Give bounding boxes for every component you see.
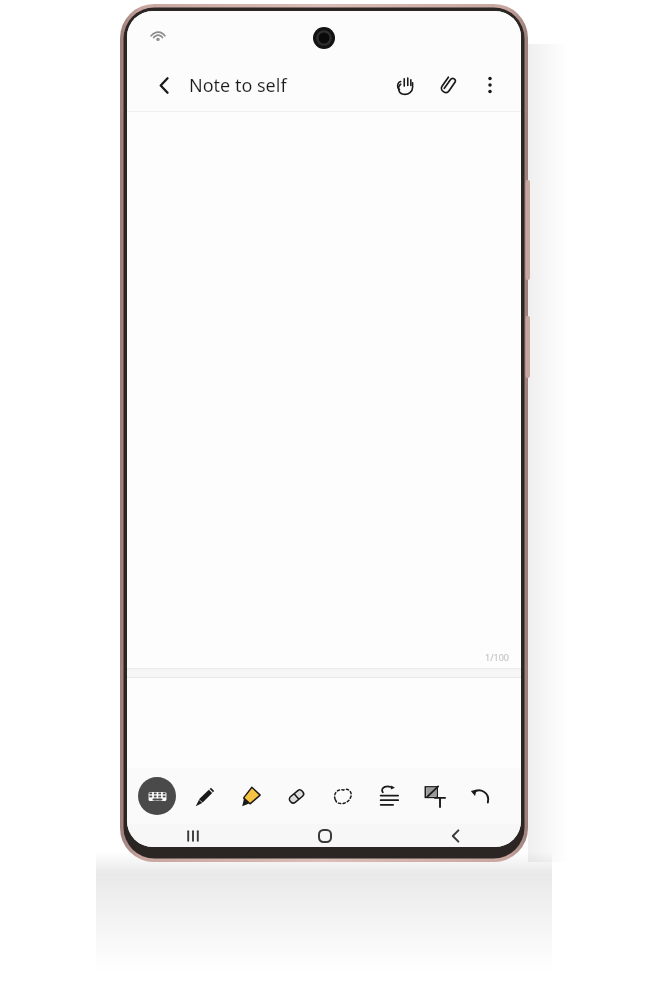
button[interactable]: Home (259, 824, 390, 847)
button[interactable]: Eraser (275, 775, 317, 817)
button[interactable]: Selection (321, 775, 363, 817)
button[interactable]: Pen (183, 775, 225, 817)
button[interactable]: More options (469, 64, 511, 106)
button[interactable]: Back (147, 68, 181, 102)
button[interactable]: Text align (367, 775, 409, 817)
button[interactable]: Highlighter (229, 775, 271, 817)
button[interactable]: Convert to text (413, 775, 455, 817)
button[interactable]: Hand tool (385, 64, 427, 106)
button[interactable]: Back (390, 824, 521, 847)
button[interactable]: Note to self (189, 73, 287, 98)
staticText: 1/100 (485, 651, 509, 663)
button[interactable]: Attach (427, 64, 469, 106)
button[interactable]: Recents (127, 824, 259, 847)
button[interactable]: Undo (459, 775, 501, 817)
button[interactable]: Keyboard (138, 777, 176, 815)
